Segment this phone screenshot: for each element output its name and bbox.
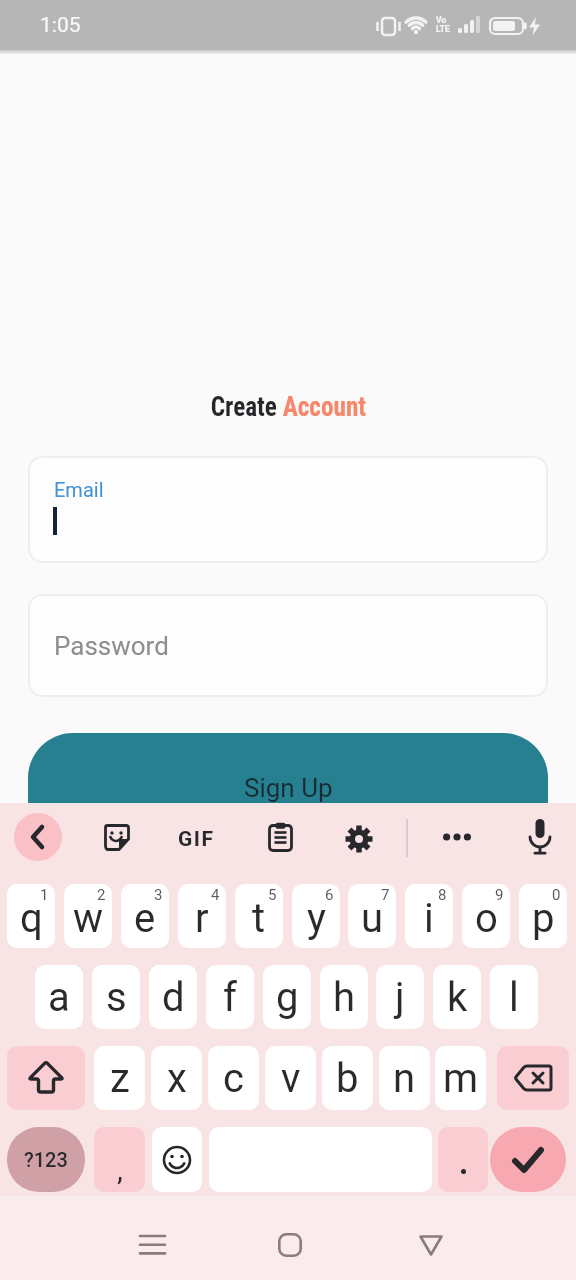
button[interactable] [14, 813, 62, 861]
staticText: 1:05 [40, 13, 81, 38]
staticText: 6 [325, 886, 334, 904]
button[interactable]: x [151, 1046, 202, 1110]
staticText: w [73, 895, 104, 942]
staticText: s [106, 974, 127, 1021]
button[interactable] [519, 884, 567, 948]
staticText: t [252, 895, 266, 942]
button[interactable] [7, 884, 55, 948]
staticText: e [134, 895, 156, 942]
staticText: Email [54, 478, 104, 501]
staticText: n [393, 1055, 416, 1102]
button[interactable]: ?123 [7, 1127, 85, 1192]
staticText: c [223, 1055, 244, 1102]
button[interactable]: Password [28, 594, 548, 697]
button[interactable] [64, 884, 112, 948]
staticText: Create Account [211, 390, 366, 423]
button[interactable] [152, 1127, 202, 1192]
staticText: k [447, 974, 468, 1021]
button[interactable]: s [92, 965, 140, 1029]
staticText: y [307, 895, 326, 942]
button[interactable]: Email [28, 456, 548, 563]
staticText: m [443, 1055, 479, 1102]
button[interactable]: GIF [172, 823, 220, 855]
button[interactable] [405, 884, 453, 948]
button[interactable] [235, 884, 283, 948]
button[interactable]: n [379, 1046, 430, 1110]
button[interactable]: f [206, 965, 254, 1029]
staticText: 9 [495, 886, 504, 904]
staticText: f [223, 974, 237, 1021]
button[interactable]: k [433, 965, 481, 1029]
staticText: v [281, 1055, 301, 1102]
staticText: q [20, 895, 43, 942]
staticText: Password [54, 631, 169, 661]
button[interactable] [7, 1046, 85, 1110]
staticText: r [195, 895, 209, 942]
staticText: p [532, 895, 555, 942]
button[interactable]: v [265, 1046, 316, 1110]
staticText: 0 [552, 886, 561, 904]
button[interactable] [264, 821, 296, 853]
button[interactable] [348, 884, 396, 948]
button[interactable] [342, 822, 376, 856]
staticText: 1 [40, 886, 49, 904]
button[interactable] [102, 822, 133, 853]
button[interactable]: l [490, 965, 538, 1029]
button[interactable]: b [322, 1046, 373, 1110]
staticText: i [424, 895, 434, 942]
button[interactable] [266, 1221, 314, 1269]
button[interactable] [438, 1127, 488, 1192]
staticText: j [395, 974, 405, 1021]
staticText: 4 [211, 886, 220, 904]
staticText: z [110, 1055, 130, 1102]
staticText: d [162, 974, 185, 1021]
button[interactable]: Sign Up [28, 733, 548, 803]
button[interactable] [516, 813, 564, 861]
button[interactable] [490, 1127, 566, 1192]
staticText: a [48, 974, 70, 1021]
staticText: 2 [97, 886, 106, 904]
staticText: l [509, 974, 519, 1021]
staticText: b [336, 1055, 359, 1102]
staticText: Vo LTE [436, 15, 450, 34]
button[interactable]: j [376, 965, 424, 1029]
staticText: 5 [268, 886, 277, 904]
staticText: ?123 [24, 1148, 68, 1171]
button[interactable]: m [435, 1046, 486, 1110]
staticText: u [361, 895, 384, 942]
button[interactable]: h [320, 965, 368, 1029]
button[interactable] [178, 884, 226, 948]
button[interactable]: d [149, 965, 197, 1029]
staticText: h [333, 974, 356, 1021]
button[interactable] [121, 884, 169, 948]
staticText: o [475, 895, 498, 942]
staticText: 8 [438, 886, 447, 904]
button[interactable] [497, 1046, 569, 1110]
staticText: 3 [154, 886, 163, 904]
button[interactable] [129, 1221, 177, 1269]
button[interactable] [407, 1221, 455, 1269]
button[interactable] [462, 884, 510, 948]
staticText: , [117, 1152, 123, 1187]
button[interactable]: c [208, 1046, 259, 1110]
button[interactable] [292, 884, 340, 948]
staticText: 7 [381, 886, 390, 904]
staticText: g [276, 974, 299, 1021]
staticText: x [167, 1055, 187, 1102]
button[interactable]: g [263, 965, 311, 1029]
button[interactable] [433, 813, 481, 861]
button[interactable]: z [94, 1046, 145, 1110]
button[interactable]: a [35, 965, 83, 1029]
button[interactable]: , [94, 1127, 145, 1192]
staticText: GIF [178, 827, 215, 852]
staticText: Sign Up [244, 773, 333, 803]
